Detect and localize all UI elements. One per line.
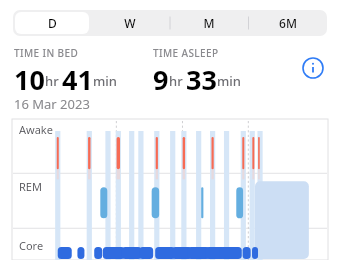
staticText: W [124,15,136,31]
staticText: min [93,72,117,90]
staticText: hr [169,72,183,90]
staticText: 10 [14,61,45,92]
staticText: Awake [19,122,53,137]
staticText: 16 Mar 2023 [14,95,90,113]
button[interactable]: D [15,12,89,34]
staticText: D [48,15,57,31]
staticText: 6M [279,15,297,31]
button[interactable]: W [93,12,167,34]
staticText: TIME IN BED [14,46,79,60]
button[interactable]: 6M [250,12,325,34]
staticText: 41 [62,61,93,92]
staticText: M [203,15,215,31]
staticText: Core [19,238,44,253]
staticText: TIME ASLEEP [153,46,219,60]
staticText: REM [19,179,42,194]
staticText: min [217,72,241,90]
button[interactable]: M [171,12,246,34]
staticText: 33 [186,61,217,92]
button[interactable]: Information [300,55,326,81]
staticText: hr [45,72,59,90]
staticText: 9 [153,61,169,92]
